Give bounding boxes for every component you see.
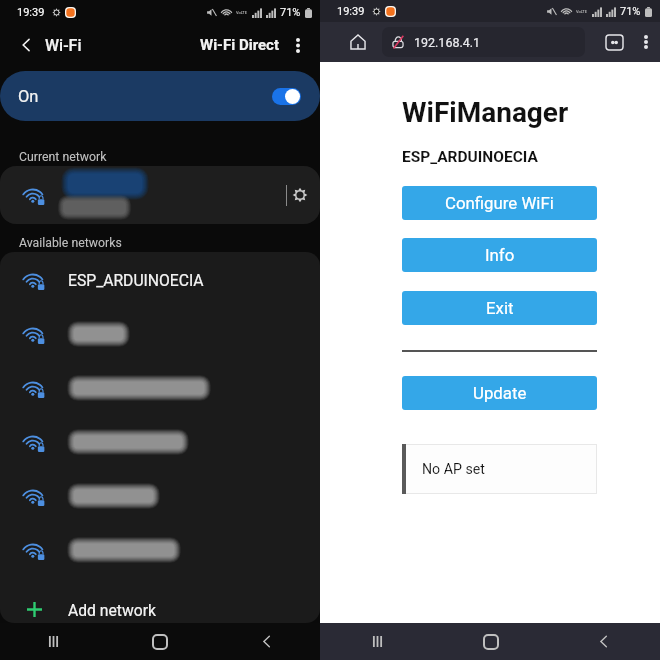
button[interactable]: Home <box>106 623 213 660</box>
staticText: 192.168.4.1 <box>414 35 481 50</box>
staticText: 19:39 <box>337 5 365 18</box>
staticText: 19:39 <box>17 6 45 19</box>
staticText: Available networks <box>19 236 122 250</box>
button[interactable]: Recents <box>0 623 106 660</box>
button[interactable] <box>0 469 320 523</box>
button[interactable]: Network settings <box>0 166 320 224</box>
button[interactable]: Configure WiFi <box>402 186 597 220</box>
staticText: WiFiManager <box>402 96 569 129</box>
button[interactable] <box>0 415 320 469</box>
staticText: ESP_ARDUINOECIA <box>402 148 538 166</box>
button[interactable]: Back <box>213 623 320 660</box>
button[interactable]: Add network <box>0 596 320 623</box>
staticText: 71% <box>280 6 301 19</box>
button[interactable]: Wi-Fi Direct <box>196 36 283 54</box>
staticText: ESP_ARDUINOECIA <box>68 271 204 289</box>
button[interactable]: Recents <box>320 623 434 660</box>
button[interactable]: ESP_ARDUINOECIA <box>0 253 320 307</box>
button[interactable] <box>0 523 320 577</box>
staticText: Wi-Fi <box>45 36 82 55</box>
button[interactable] <box>0 307 320 361</box>
button[interactable] <box>0 361 320 415</box>
staticText: No AP set <box>422 461 485 478</box>
staticText: On <box>18 87 39 106</box>
button[interactable]: Back <box>547 623 660 660</box>
button[interactable]: 192.168.4.1 <box>382 27 585 57</box>
button[interactable]: Network settings <box>286 181 314 209</box>
staticText: Exit <box>486 298 514 318</box>
button[interactable]: Tabs <box>601 29 627 55</box>
staticText: Info <box>485 245 515 265</box>
staticText: Add network <box>68 601 156 619</box>
staticText: VoLTE <box>576 9 588 14</box>
button[interactable]: Home <box>343 27 373 57</box>
staticText: Configure WiFi <box>445 193 554 213</box>
button[interactable]: Info <box>402 238 597 272</box>
staticText: VoLTE <box>236 10 248 15</box>
staticText: Update <box>473 383 527 403</box>
staticText: Current network <box>19 150 107 164</box>
button[interactable]: More options <box>634 30 658 54</box>
button[interactable]: Home <box>434 623 547 660</box>
button[interactable]: Back <box>12 31 40 59</box>
button[interactable]: On <box>0 71 320 121</box>
staticText: 71% <box>620 5 641 18</box>
button[interactable]: More options <box>286 33 310 57</box>
button[interactable]: Update <box>402 376 597 410</box>
button[interactable]: Exit <box>402 291 597 325</box>
